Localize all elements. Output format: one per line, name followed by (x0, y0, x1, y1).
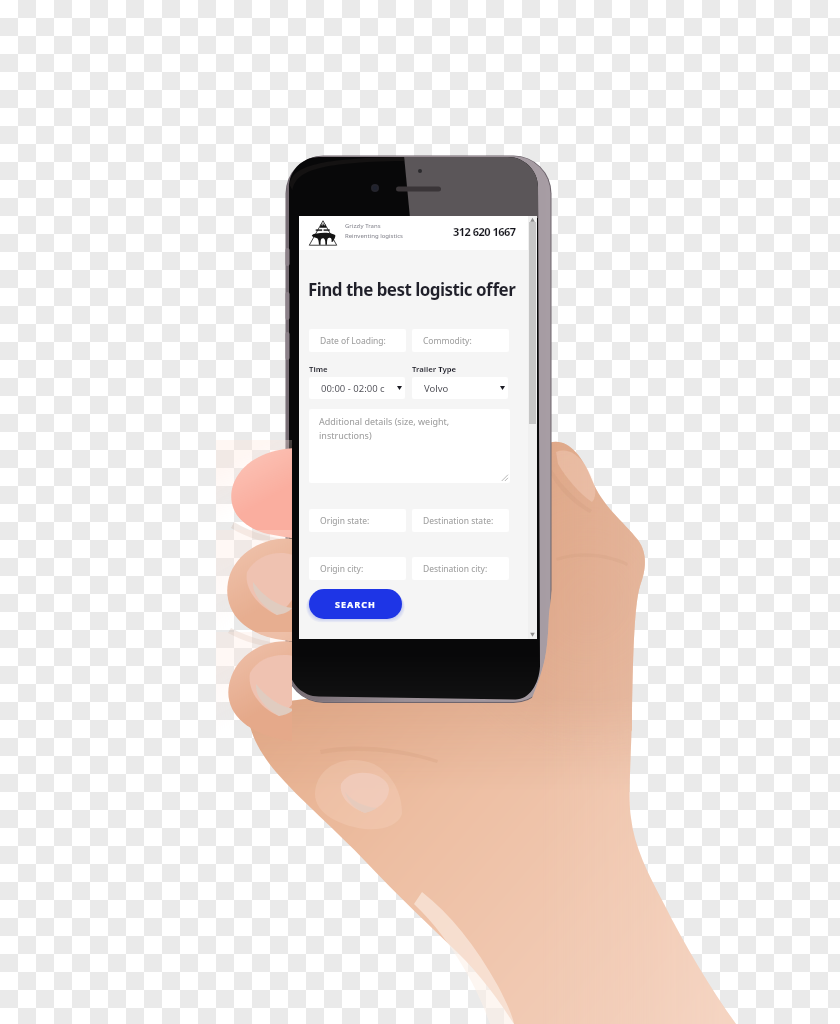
staticText: instructions) (319, 429, 372, 441)
button[interactable]: Additional details (size, weight, (309, 409, 510, 483)
staticText: Time (309, 364, 328, 374)
staticText: Destination state: (423, 515, 494, 527)
staticText: Reinventing logistics (345, 232, 403, 240)
staticText: Additional details (size, weight, (319, 415, 450, 427)
button[interactable]: Origin city: (320, 557, 406, 580)
staticText: SEARCH (335, 598, 376, 610)
button[interactable]: Volvo (412, 377, 508, 399)
staticText: Origin city: (320, 563, 364, 575)
staticText: Find the best logistic offer (308, 278, 516, 301)
staticText: Trailer Type (412, 364, 457, 374)
button[interactable]: Destination state: (423, 509, 509, 532)
button[interactable]: Destination city: (423, 557, 509, 580)
button[interactable]: Origin state: (320, 509, 406, 532)
button[interactable]: Call 312 620 1667 (453, 224, 516, 239)
staticText: 00:00 - 02:00 c (321, 382, 385, 395)
staticText: Volvo (424, 382, 449, 395)
staticText: Date of Loading: (320, 335, 386, 347)
button[interactable]: 00:00 - 02:00 c (309, 377, 405, 399)
staticText: Commodity: (423, 335, 472, 347)
button[interactable]: SEARCH (309, 589, 402, 619)
staticText: Destination city: (423, 563, 488, 575)
button[interactable]: Date of Loading: (320, 329, 406, 352)
staticText: 312 620 1667 (453, 224, 516, 239)
button[interactable]: Commodity: (423, 329, 509, 352)
staticText: Origin state: (320, 515, 370, 527)
staticText: Grizzly Trans (345, 222, 381, 230)
